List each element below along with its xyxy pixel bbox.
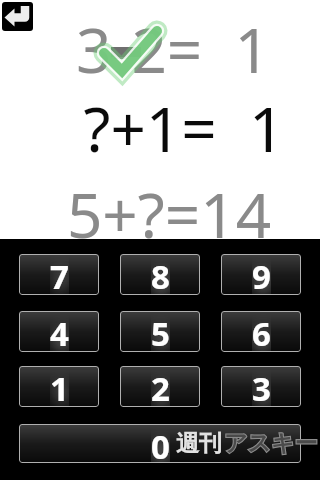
staticText: 5 <box>151 311 170 352</box>
staticText: 2 <box>151 366 170 407</box>
staticText: 0 <box>151 424 170 463</box>
button[interactable] <box>2 2 33 31</box>
button[interactable]: 6 <box>221 311 301 352</box>
button[interactable]: 5 <box>120 311 200 352</box>
staticText: 6 <box>252 311 271 352</box>
staticText: ?+1= 1 <box>24 86 320 170</box>
staticText: 週刊 <box>176 429 222 458</box>
staticText: アスキー <box>224 429 318 458</box>
button[interactable]: 2 <box>120 366 200 407</box>
staticText: 8 <box>151 254 170 295</box>
button[interactable]: 1 <box>19 366 99 407</box>
button[interactable]: 4 <box>19 311 99 352</box>
button[interactable]: 0 <box>19 424 301 463</box>
staticText: 3 <box>252 366 271 407</box>
button[interactable]: 3 <box>221 366 301 407</box>
staticText: 7 <box>50 254 69 295</box>
button[interactable]: 9 <box>221 254 301 295</box>
staticText: アスキー <box>224 429 318 458</box>
staticText: 1 <box>50 366 69 407</box>
staticText: 9 <box>252 254 271 295</box>
button[interactable]: 7 <box>19 254 99 295</box>
staticText: 5+?=14 <box>9 172 320 256</box>
staticText: 3-2= 1 <box>13 7 320 91</box>
staticText: 4 <box>50 311 69 352</box>
button[interactable]: 8 <box>120 254 200 295</box>
